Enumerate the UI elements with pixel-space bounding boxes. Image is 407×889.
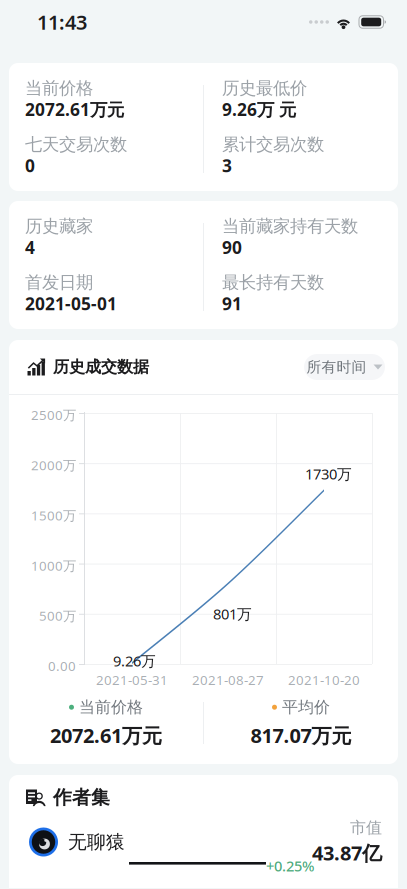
staticText: 43.87亿 (312, 839, 382, 866)
staticText: 2072.61万元 (25, 98, 124, 121)
staticText: 2021-10-20 (288, 671, 360, 689)
staticText: 历史成交数据 (53, 357, 149, 377)
staticText: 9.26万 元 (222, 98, 296, 121)
button[interactable]: 所有时间 (304, 354, 385, 380)
staticText: 11:43 (37, 9, 87, 35)
staticText: 作者集 (53, 786, 110, 809)
staticText: 2000万 (31, 456, 76, 474)
staticText: 2021-05-31 (96, 671, 168, 689)
staticText: 首发日期 (25, 272, 93, 293)
staticText: 1730万 (305, 464, 352, 483)
staticText: 2021-08-27 (192, 671, 264, 689)
staticText: 市值 (350, 818, 382, 838)
staticText: 9.26万 (113, 651, 156, 670)
staticText: 当前价格 (79, 697, 143, 717)
staticText: 所有时间 (306, 358, 366, 376)
staticText: 当前价格 (25, 77, 93, 99)
staticText: 2500万 (31, 406, 76, 424)
staticText: 历史藏家 (25, 215, 93, 237)
staticText: 0 (25, 154, 35, 177)
staticText: 当前藏家持有天数 (222, 215, 358, 237)
staticText: +0.25% (266, 856, 314, 875)
staticText: 无聊猿 (68, 830, 125, 853)
staticText: 500万 (39, 607, 76, 624)
staticText: 801万 (213, 604, 252, 623)
staticText: 累计交易次数 (222, 134, 324, 155)
staticText: 90 (222, 236, 242, 259)
staticText: 平均价 (282, 697, 330, 717)
staticText: 七天交易次数 (25, 134, 127, 155)
staticText: 4 (25, 236, 35, 259)
staticText: 最长持有天数 (222, 272, 324, 293)
button[interactable]: 无聊猿 (9, 820, 398, 888)
staticText: 1000万 (31, 557, 76, 574)
staticText: 2072.61万元 (50, 722, 162, 749)
staticText: 历史最低价 (222, 77, 307, 99)
staticText: 2021-05-01 (25, 292, 117, 315)
staticText: 817.07万元 (250, 722, 351, 749)
staticText: 1500万 (31, 506, 76, 524)
staticText: 3 (222, 154, 232, 177)
staticText: 0.00 (48, 657, 76, 675)
staticText: 91 (222, 292, 242, 315)
